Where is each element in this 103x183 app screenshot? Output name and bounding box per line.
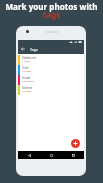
button[interactable]: Summer: [18, 85, 84, 95]
staticText: Trees: [22, 66, 29, 70]
staticText: 1 image: [22, 60, 31, 63]
staticText: Tags: [30, 47, 38, 52]
staticText: 8 images: [22, 90, 32, 93]
staticText: 5 images: [22, 70, 32, 73]
staticText: Sunset: [22, 76, 31, 80]
staticText: 100 images: [22, 80, 34, 83]
staticText: Golden retr: [22, 56, 36, 60]
staticText: Mark your photos with different: [0, 1, 103, 12]
button[interactable]: Sunset: [18, 75, 84, 85]
button[interactable]: Trees: [18, 65, 84, 75]
button[interactable]: Golden retr: [18, 55, 84, 65]
button[interactable]: Recents: [62, 151, 84, 159]
staticText: Summer: [22, 86, 33, 90]
button[interactable]: Add tag: [71, 139, 80, 148]
button[interactable]: Back: [18, 151, 40, 159]
staticText: tags: [0, 9, 103, 20]
button[interactable]: Back: [20, 46, 26, 52]
button[interactable]: Home: [40, 151, 62, 159]
